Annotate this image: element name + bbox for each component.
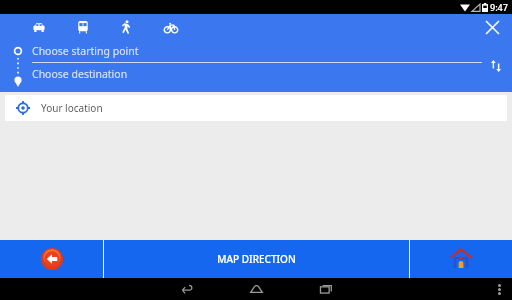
button[interactable]: Transit bbox=[72, 16, 94, 38]
button[interactable]: Back bbox=[164, 278, 208, 300]
button[interactable]: Home bbox=[410, 240, 512, 278]
button[interactable]: MAP DIRECTION bbox=[104, 240, 409, 278]
staticText: Choose starting point bbox=[32, 44, 139, 58]
button[interactable]: Choose destination bbox=[32, 63, 482, 85]
staticText: MAP DIRECTION bbox=[217, 252, 296, 266]
button[interactable]: Choose starting point bbox=[32, 40, 482, 62]
button[interactable]: Home bbox=[234, 278, 278, 300]
button[interactable]: Back bbox=[0, 240, 103, 278]
button[interactable]: Drive bbox=[28, 16, 50, 38]
staticText: Choose destination bbox=[32, 67, 128, 81]
button[interactable]: Close bbox=[480, 15, 504, 39]
button[interactable]: Bike bbox=[160, 16, 182, 38]
button[interactable]: Recent apps bbox=[304, 278, 348, 300]
staticText: 9:47 bbox=[490, 1, 508, 13]
button[interactable]: Swap start and destination bbox=[485, 55, 507, 77]
button[interactable]: Walk bbox=[116, 16, 138, 38]
button[interactable]: More options bbox=[492, 282, 506, 296]
button[interactable]: Your location bbox=[5, 95, 507, 121]
staticText: Your location bbox=[41, 101, 103, 115]
